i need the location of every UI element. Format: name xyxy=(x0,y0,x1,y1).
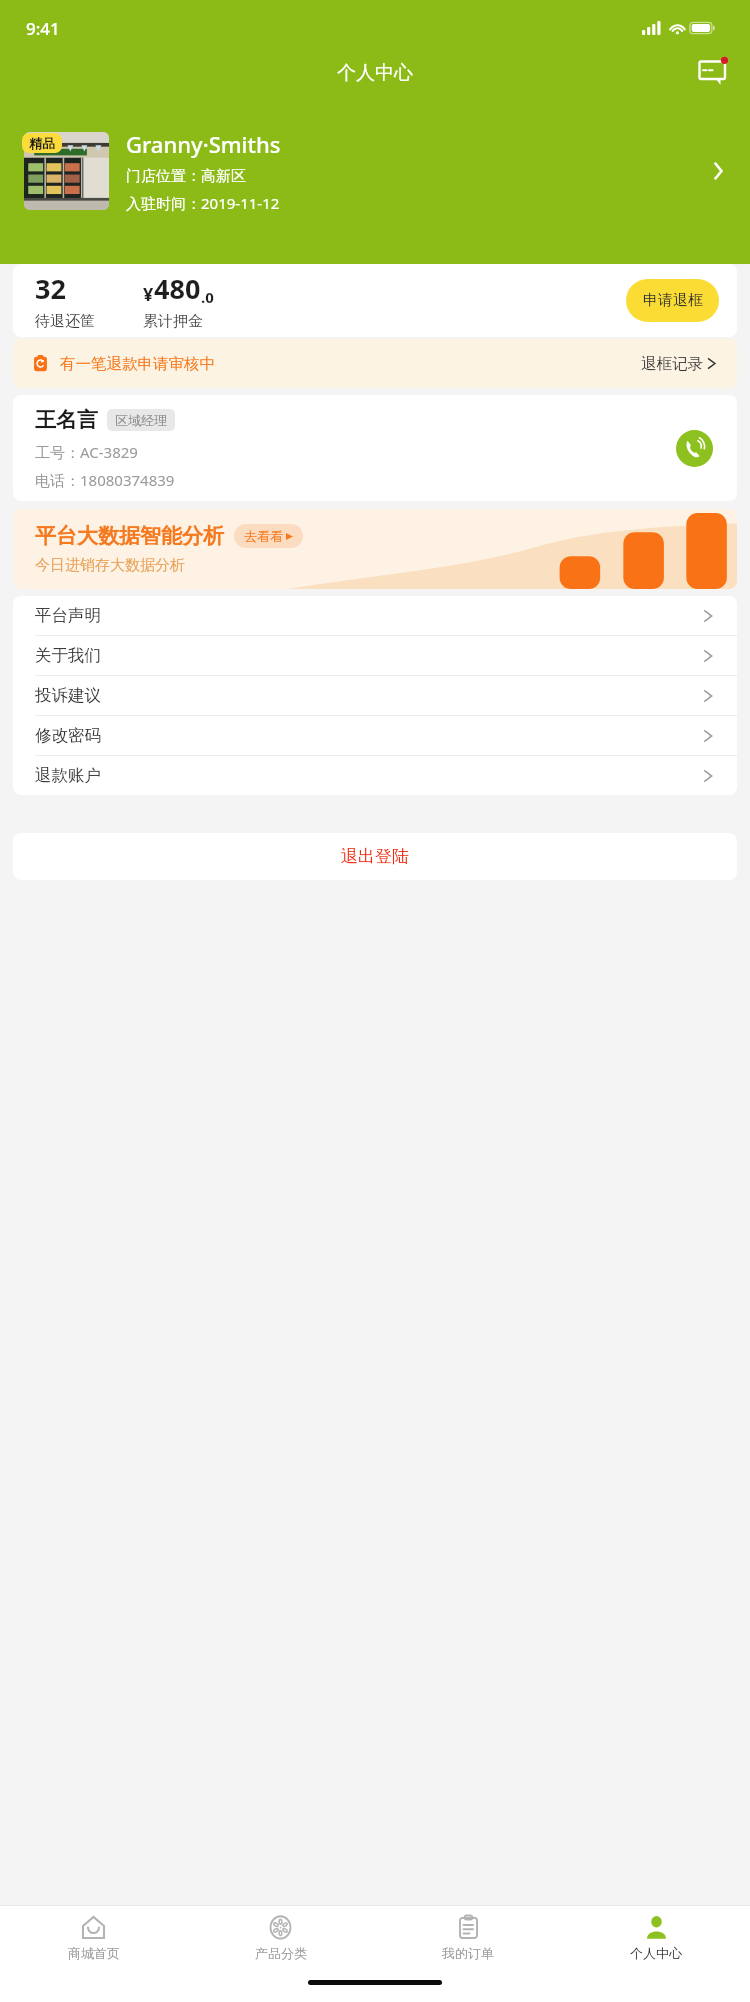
staticText: 平台声明 xyxy=(35,605,101,626)
staticText: 累计押金 xyxy=(143,312,203,331)
button[interactable]: 产品分类 xyxy=(187,1906,374,1969)
button[interactable]: 修改密码 xyxy=(13,716,737,755)
staticText: 退款账户 xyxy=(35,765,101,786)
button[interactable]: 我的订单 xyxy=(374,1906,562,1969)
staticText: 入驻时间：2019-11-12 xyxy=(126,193,280,213)
button[interactable]: Messages xyxy=(696,56,732,90)
staticText: 480 xyxy=(154,270,201,307)
button[interactable]: 有一笔退款申请审核中 xyxy=(13,339,737,388)
button[interactable]: Call manager xyxy=(676,430,713,467)
button[interactable]: 个人中心 xyxy=(562,1906,750,1969)
staticText: 精品 xyxy=(29,135,55,151)
button[interactable]: 去看看 xyxy=(234,524,303,548)
staticText: 9:41 xyxy=(26,17,60,40)
staticText: 门店位置：高新区 xyxy=(126,167,246,186)
staticText: Granny·Smiths xyxy=(126,129,281,159)
button[interactable]: 平台大数据智能分析 xyxy=(13,509,737,589)
staticText: 修改密码 xyxy=(35,725,101,746)
staticText: 电话：18080374839 xyxy=(35,470,175,490)
staticText: 投诉建议 xyxy=(35,685,101,706)
button[interactable]: 王名言 xyxy=(13,395,737,501)
staticText: 商城首页 xyxy=(68,1945,120,1961)
staticText: 王名言 xyxy=(35,407,98,433)
button[interactable]: 商城首页 xyxy=(0,1906,187,1969)
button[interactable]: 申请退框 xyxy=(626,279,719,322)
staticText: 个人中心 xyxy=(337,61,413,85)
staticText: 今日进销存大数据分析 xyxy=(35,556,185,575)
staticText: .0 xyxy=(201,287,214,307)
button[interactable]: 退款账户 xyxy=(13,756,737,795)
button[interactable]: 精品 xyxy=(0,96,750,246)
staticText: 待退还筐 xyxy=(35,312,95,331)
button[interactable]: 投诉建议 xyxy=(13,676,737,715)
staticText: 去看看 xyxy=(244,528,283,544)
staticText: 申请退框 xyxy=(643,291,703,310)
staticText: 退框记录 xyxy=(641,354,703,374)
button[interactable]: 平台声明 xyxy=(13,596,737,635)
staticText: 退出登陆 xyxy=(341,846,409,867)
staticText: 区域经理 xyxy=(115,412,167,428)
staticText: 平台大数据智能分析 xyxy=(35,523,224,549)
button[interactable]: 关于我们 xyxy=(13,636,737,675)
staticText: 我的订单 xyxy=(442,1945,494,1961)
staticText: 32 xyxy=(35,270,66,307)
staticText: 产品分类 xyxy=(255,1945,307,1961)
button[interactable]: 退出登陆 xyxy=(13,833,737,880)
staticText: 关于我们 xyxy=(35,645,101,666)
staticText: 工号：AC-3829 xyxy=(35,442,138,462)
staticText: 有一笔退款申请审核中 xyxy=(60,354,215,374)
staticText: ¥ xyxy=(143,282,154,307)
staticText: 个人中心 xyxy=(630,1945,682,1961)
